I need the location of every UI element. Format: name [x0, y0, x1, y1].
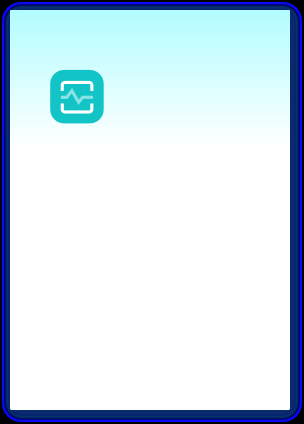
button[interactable]: App icon — [50, 70, 104, 123]
